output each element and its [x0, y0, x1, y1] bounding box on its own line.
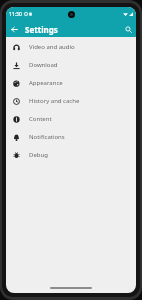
button[interactable]: Debug — [6, 146, 136, 164]
staticText: History and cache — [29, 97, 80, 105]
staticText: Appearance — [29, 79, 63, 87]
staticText: Content — [29, 115, 52, 123]
button[interactable]: Appearance — [6, 74, 136, 92]
staticText: Debug — [29, 151, 48, 159]
staticText: Notifications — [29, 133, 65, 141]
button[interactable]: Video and audio — [6, 38, 136, 56]
staticText: Settings — [25, 24, 58, 35]
button[interactable]: Back — [6, 21, 22, 37]
staticText: Video and audio — [29, 43, 75, 51]
button[interactable]: Download — [6, 56, 136, 74]
button[interactable]: Content — [6, 110, 136, 128]
button[interactable]: Notifications — [6, 128, 136, 146]
button[interactable]: Search — [120, 21, 136, 37]
staticText: Download — [29, 61, 58, 69]
staticText: 11:30 — [9, 11, 22, 18]
button[interactable]: History and cache — [6, 92, 136, 110]
